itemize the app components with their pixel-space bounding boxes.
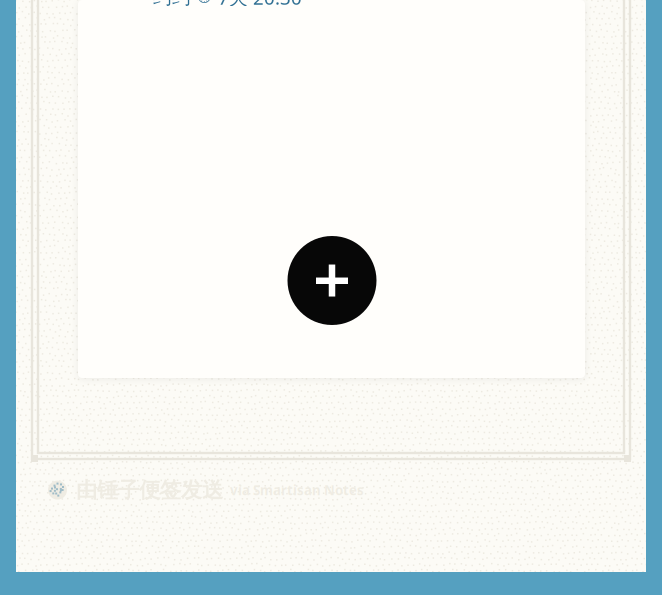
button[interactable]: 由锤子便签发送	[48, 477, 348, 503]
staticText: 约约	[153, 0, 191, 9]
staticText: 由锤子便签发送	[76, 477, 223, 503]
staticText: ⏱	[197, 0, 212, 6]
staticText: 7天 20:30	[218, 0, 302, 10]
button[interactable]: New note	[287, 236, 376, 325]
staticText: via Smartisan Notes	[230, 481, 364, 499]
